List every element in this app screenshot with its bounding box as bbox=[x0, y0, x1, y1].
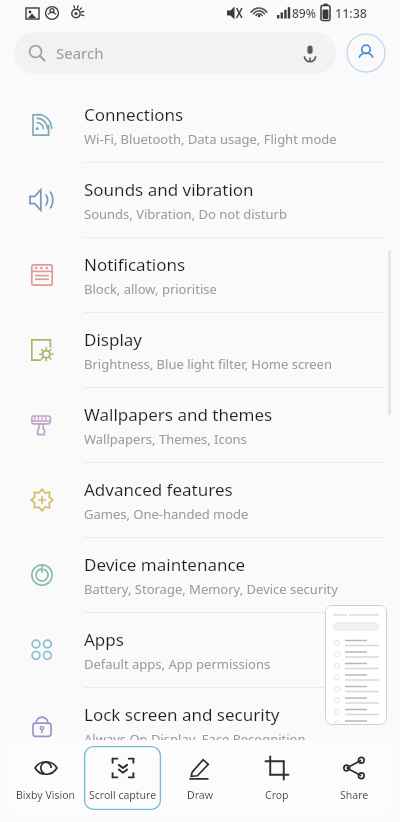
staticText: Lock screen and security bbox=[84, 703, 280, 726]
staticText: Scroll capture bbox=[89, 788, 157, 802]
button[interactable]: Voice search bbox=[298, 41, 322, 65]
staticText: Samsung Cloud, Backup and restore, Smart… bbox=[84, 797, 360, 815]
staticText: Games, One-handed mode bbox=[84, 505, 249, 523]
staticText: 11:38 bbox=[335, 5, 368, 22]
staticText: 89% bbox=[292, 5, 316, 21]
button[interactable]: Lock screen and security bbox=[0, 688, 400, 762]
button[interactable]: Display bbox=[0, 313, 400, 387]
button[interactable]: Draw bbox=[162, 747, 238, 809]
button[interactable]: Cloud and accounts bbox=[0, 763, 400, 822]
staticText: Brightness, Blue light filter, Home scre… bbox=[84, 355, 332, 373]
button[interactable]: Screenshot preview bbox=[325, 605, 387, 725]
staticText: Always On Display, Face Recognition, bbox=[84, 730, 313, 748]
staticText: Connections bbox=[84, 103, 184, 126]
button[interactable]: Device maintenance bbox=[0, 538, 400, 612]
staticText: Share bbox=[340, 788, 369, 802]
staticText: Cloud and accounts bbox=[84, 770, 242, 793]
button[interactable]: Crop bbox=[239, 747, 315, 809]
staticText: Apps bbox=[84, 628, 124, 651]
staticText: Bixby Vision bbox=[16, 788, 76, 802]
button[interactable]: Account bbox=[346, 33, 386, 73]
staticText: Wallpapers and themes bbox=[84, 403, 273, 426]
staticText: Sounds and vibration bbox=[84, 178, 254, 201]
staticText: Device maintenance bbox=[84, 553, 246, 576]
button[interactable]: Search bbox=[14, 32, 336, 74]
staticText: Search bbox=[56, 43, 104, 63]
button[interactable]: Share bbox=[316, 747, 392, 809]
button[interactable]: Notifications bbox=[0, 238, 400, 312]
button[interactable]: Apps bbox=[0, 613, 400, 687]
staticText: Crop bbox=[265, 788, 289, 802]
button[interactable]: Scroll capture bbox=[84, 747, 161, 809]
staticText: Default apps, App permissions bbox=[84, 655, 271, 673]
staticText: Notifications bbox=[84, 253, 186, 276]
staticText: Sounds, Vibration, Do not disturb bbox=[84, 205, 287, 223]
staticText: Battery, Storage, Memory, Device securit… bbox=[84, 580, 338, 598]
button[interactable]: Bixby Vision bbox=[8, 747, 84, 809]
staticText: Block, allow, prioritise bbox=[84, 280, 217, 298]
button[interactable]: Connections bbox=[0, 88, 400, 162]
staticText: Wallpapers, Themes, Icons bbox=[84, 430, 247, 448]
button[interactable]: Sounds and vibration bbox=[0, 163, 400, 237]
staticText: Wi-Fi, Bluetooth, Data usage, Flight mod… bbox=[84, 130, 337, 148]
staticText: Advanced features bbox=[84, 478, 233, 501]
button[interactable]: Advanced features bbox=[0, 463, 400, 537]
staticText: Draw bbox=[187, 788, 213, 802]
staticText: Display bbox=[84, 328, 142, 351]
button[interactable]: Wallpapers and themes bbox=[0, 388, 400, 462]
